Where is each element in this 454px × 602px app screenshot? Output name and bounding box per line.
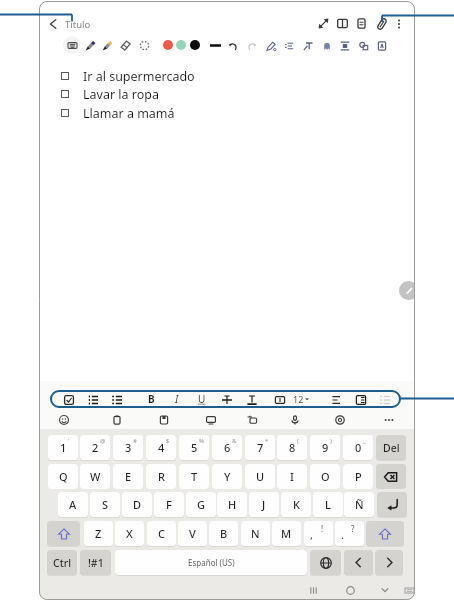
button[interactable]: Key [48, 464, 78, 489]
button[interactable]: Key [113, 435, 143, 460]
button[interactable]: Bulleted list [108, 391, 125, 408]
button[interactable]: Keyboard [63, 36, 81, 54]
button[interactable]: Settings [331, 411, 348, 428]
button[interactable]: Text box [299, 37, 316, 54]
button[interactable]: Indent [352, 391, 369, 408]
button[interactable]: Key [115, 550, 307, 575]
button[interactable]: Key [122, 492, 152, 517]
button[interactable]: Checklist [60, 391, 77, 408]
button[interactable]: Paragraph [280, 37, 297, 54]
button[interactable]: Key [80, 550, 111, 575]
button[interactable]: Colour [173, 37, 189, 53]
button[interactable]: Key [179, 435, 209, 460]
button[interactable]: Alignment [328, 391, 345, 408]
button[interactable]: Eraser [117, 37, 134, 54]
button[interactable]: Key [376, 435, 406, 460]
button[interactable]: B [143, 391, 159, 407]
button[interactable]: Key [343, 464, 373, 489]
button[interactable]: Key [212, 464, 242, 489]
button[interactable]: Shapes [355, 37, 372, 54]
button[interactable]: Key [154, 492, 184, 517]
button[interactable]: Key [343, 435, 373, 460]
button[interactable]: More [380, 411, 397, 428]
button[interactable]: More options [390, 15, 407, 32]
button[interactable]: Pen settings [262, 37, 279, 54]
button[interactable]: Colour [160, 37, 176, 53]
button[interactable]: Insert [336, 37, 353, 54]
button[interactable]: Key [281, 492, 311, 517]
button[interactable]: Key [209, 521, 238, 546]
button[interactable]: Key [115, 521, 144, 546]
button[interactable]: I [169, 391, 185, 407]
button[interactable]: Key [304, 521, 333, 546]
button[interactable]: Key [272, 521, 301, 546]
button[interactable]: Clipboard [108, 411, 125, 428]
button[interactable]: Back [43, 14, 63, 34]
button[interactable]: Key [47, 521, 80, 546]
button[interactable]: Shape [318, 37, 335, 54]
button[interactable]: Key [366, 521, 404, 546]
button[interactable]: Voice input [286, 411, 303, 428]
button[interactable]: Strikethrough [218, 391, 235, 408]
button[interactable]: Expand [314, 14, 333, 33]
button[interactable]: Text colour [243, 391, 260, 408]
button[interactable]: Key [186, 492, 216, 517]
button[interactable]: Redo [243, 37, 260, 54]
button[interactable]: Key [212, 435, 242, 460]
button[interactable]: Ir al supermercado [61, 67, 301, 85]
button[interactable]: Key [90, 492, 120, 517]
button[interactable]: Hide keyboard [401, 582, 415, 598]
button[interactable]: View mode [352, 14, 371, 33]
button[interactable]: Key [47, 550, 77, 575]
button[interactable]: Key [313, 492, 343, 517]
button[interactable]: Edit [399, 281, 415, 300]
button[interactable]: Key [245, 435, 275, 460]
button[interactable]: Key [377, 492, 407, 517]
button[interactable]: Key [376, 464, 406, 489]
button[interactable]: Key [179, 464, 209, 489]
button[interactable]: Stroke width [207, 37, 223, 53]
button[interactable]: Stickers [155, 411, 172, 428]
button[interactable]: Translate [243, 411, 260, 428]
button[interactable]: Emoji [55, 411, 72, 428]
button[interactable]: Highlighter [99, 37, 116, 54]
button[interactable]: Numbered list [84, 391, 101, 408]
button[interactable]: Key [146, 435, 176, 460]
button[interactable]: Media [202, 411, 219, 428]
button[interactable]: Key [80, 435, 110, 460]
button[interactable]: Attach [372, 14, 391, 33]
button[interactable]: Key [310, 550, 341, 575]
button[interactable]: Key [375, 550, 403, 575]
button[interactable]: U [194, 391, 210, 407]
button[interactable]: More formatting [376, 391, 393, 408]
button[interactable]: Llamar a mamá [61, 104, 301, 122]
button[interactable]: Key [80, 464, 110, 489]
button[interactable]: Key [147, 521, 176, 546]
button[interactable]: Highlight [271, 391, 288, 408]
button[interactable]: Split view [333, 14, 352, 33]
button[interactable]: Key [84, 521, 113, 546]
button[interactable]: Key [344, 550, 373, 575]
button[interactable]: Key [245, 464, 275, 489]
button[interactable]: Key [178, 521, 207, 546]
button[interactable]: Pen [82, 37, 99, 54]
button[interactable]: Back [376, 581, 394, 599]
button[interactable]: Key [113, 464, 143, 489]
button[interactable]: Key [335, 521, 364, 546]
button[interactable]: Key [249, 492, 279, 517]
button[interactable]: Colour [187, 37, 203, 53]
button[interactable]: Key [241, 521, 270, 546]
button[interactable]: Key [217, 492, 247, 517]
button[interactable]: Page [373, 37, 390, 54]
button[interactable]: Key [58, 492, 88, 517]
button[interactable]: Key [277, 464, 307, 489]
button[interactable]: Key [344, 492, 374, 517]
button[interactable]: Home [341, 581, 359, 599]
button[interactable]: 12 [289, 391, 313, 407]
button[interactable]: Lasso select [136, 37, 153, 54]
button[interactable]: Key [310, 435, 340, 460]
button[interactable]: Key [277, 435, 307, 460]
button[interactable]: Key [146, 464, 176, 489]
button[interactable]: Recent apps [304, 581, 322, 599]
button[interactable]: Undo [224, 37, 241, 54]
